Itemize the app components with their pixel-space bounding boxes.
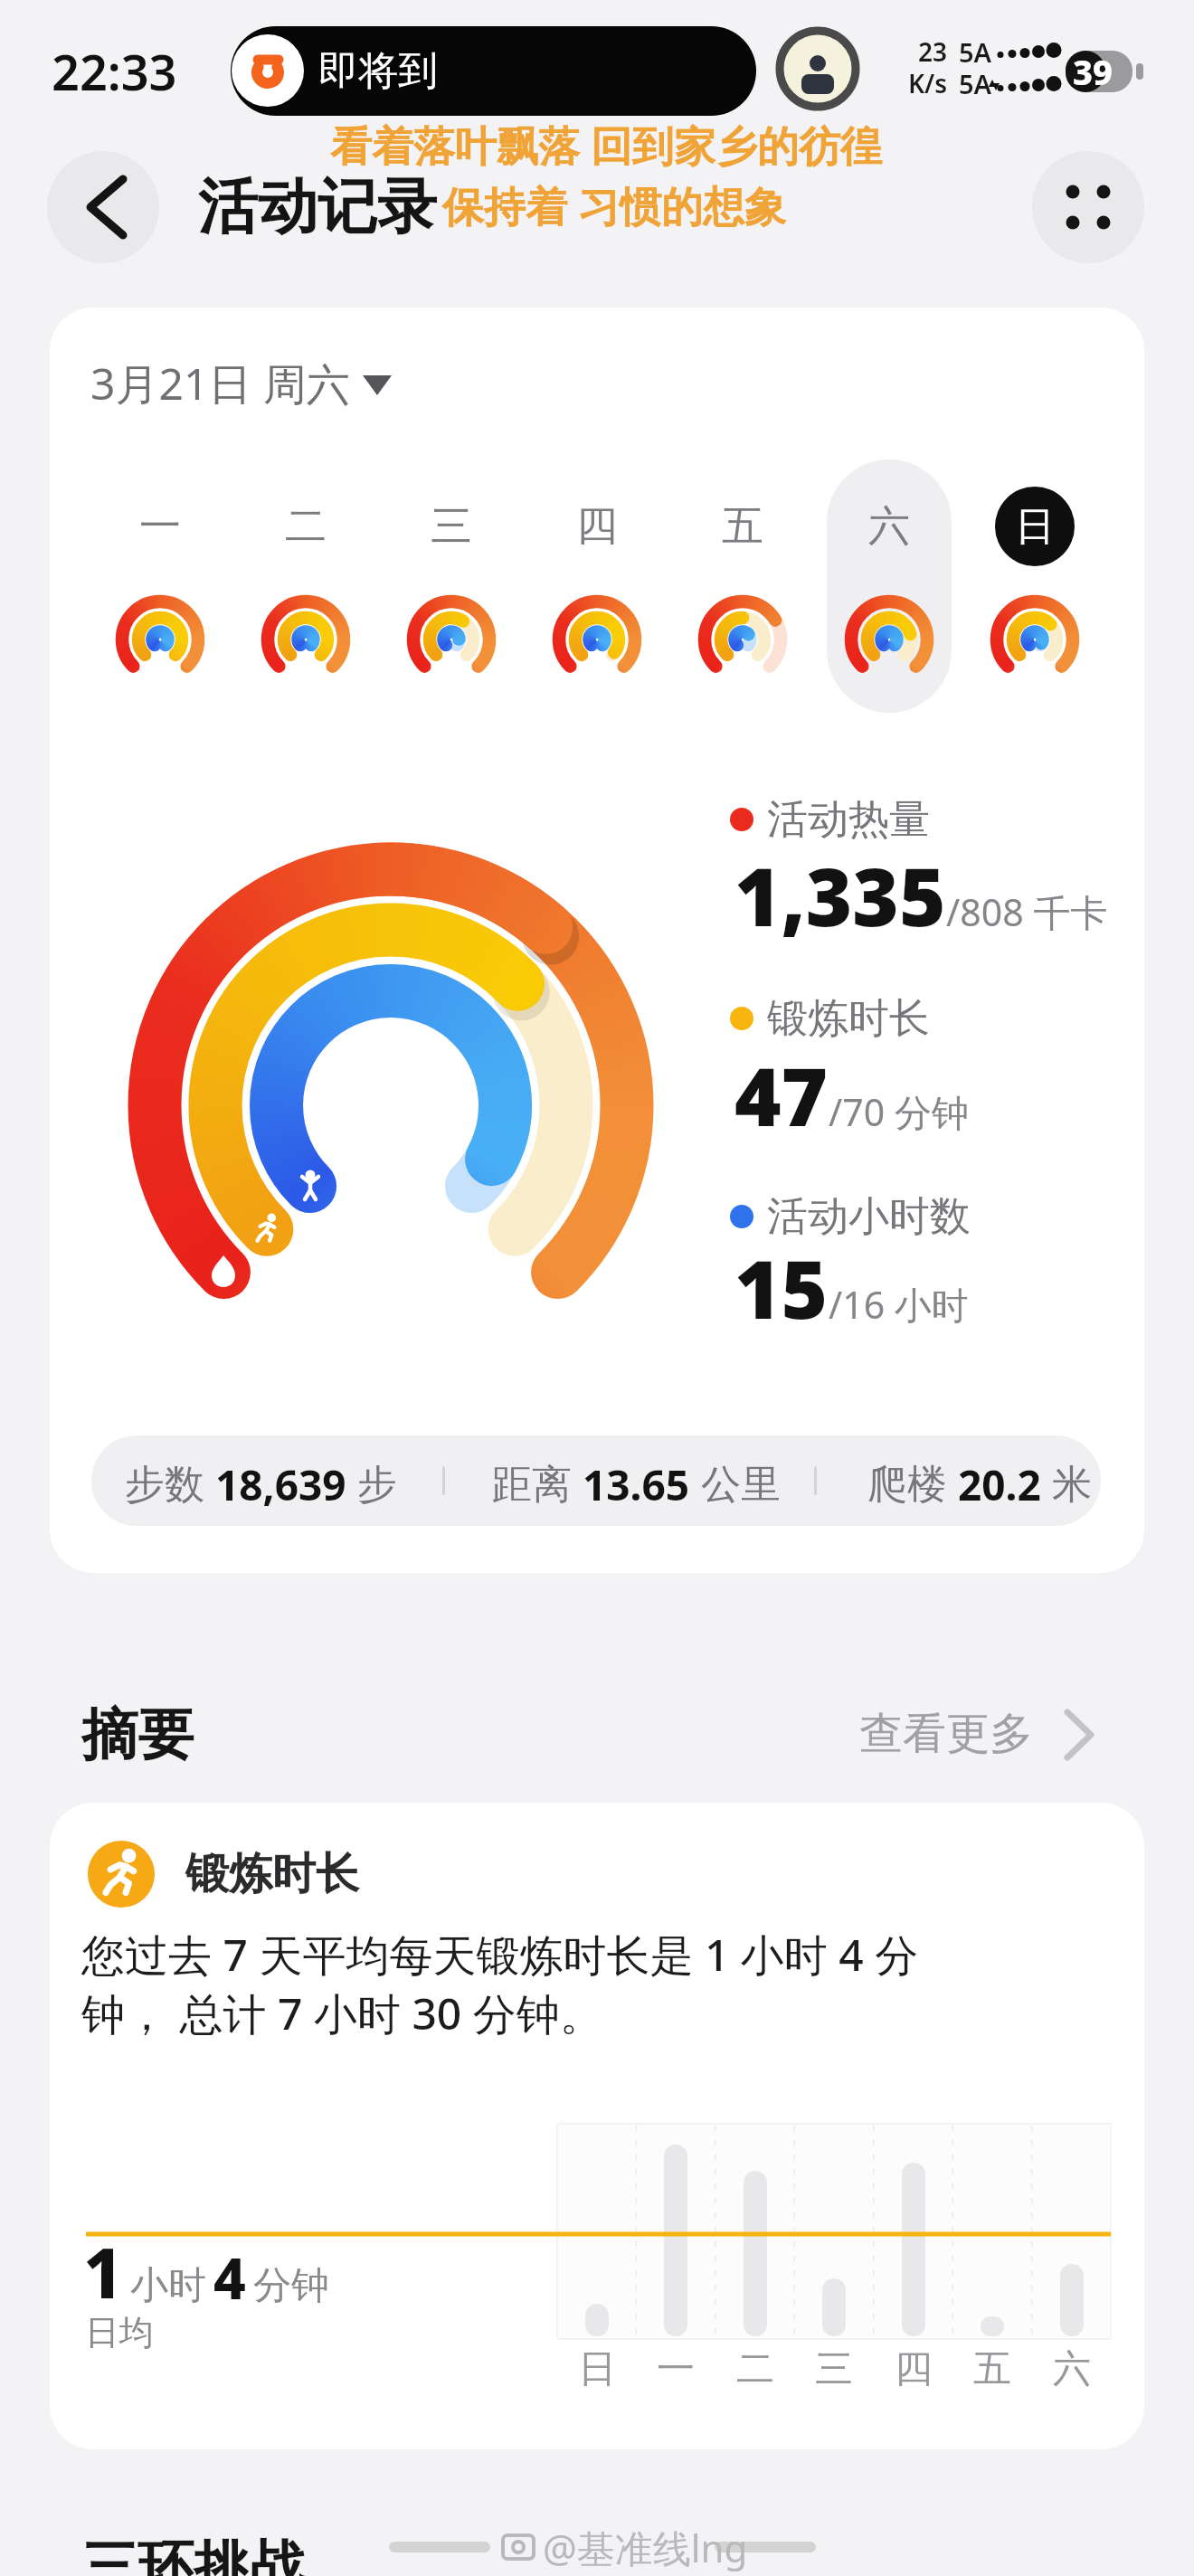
staticText: 18,639 [215,1456,346,1513]
button[interactable] [81,347,407,420]
staticText: 39 [1073,48,1113,95]
button[interactable] [776,27,859,110]
button[interactable] [678,448,808,710]
staticText: 13.65 [583,1456,690,1513]
staticText: /16 小时 [829,1279,969,1330]
staticText: 爬楼 [867,1460,947,1510]
button[interactable] [241,448,371,710]
staticText: 四 [895,2345,933,2393]
staticText: 活动热量 [767,794,930,846]
staticText: 六 [868,500,910,553]
button[interactable] [824,448,954,710]
staticText: /70 分钟 [829,1086,969,1137]
staticText: @基准线lng [543,2522,748,2573]
staticText: 日 [578,2345,616,2393]
staticText: 四 [576,500,618,553]
staticText: 23 [918,34,948,69]
staticText: 小时 [130,2262,206,2310]
staticText: 距离 [492,1460,572,1510]
button[interactable] [1032,151,1144,263]
staticText: 五 [722,500,763,553]
staticText: 五 [973,2345,1011,2393]
staticText: 5A [959,66,992,101]
staticText: 一 [139,500,181,553]
staticText: 保持着 习惯的想象 [442,177,786,234]
staticText: 15 [734,1234,829,1342]
staticText: 活动小时数 [767,1191,971,1243]
staticText: 日 [1015,502,1055,552]
staticText: 锻炼时长 [185,1847,359,1901]
button[interactable] [532,448,662,710]
button[interactable] [95,448,225,710]
staticText: 看着落叶飘落 回到家乡的彷徨 [330,117,882,174]
staticText: 1,335 [734,841,946,950]
staticText: 日均 [85,2311,154,2354]
staticText: 步 [357,1460,397,1510]
staticText: 1 [83,2225,123,2319]
staticText: 一 [657,2345,695,2393]
button[interactable] [50,1803,1144,2449]
staticText: K/s [908,66,948,100]
staticText: 分钟 [253,2262,329,2310]
button[interactable] [91,1435,1101,1526]
button[interactable] [850,1700,1113,1769]
staticText: 步数 [125,1460,204,1510]
staticText: /808 千卡 [946,886,1108,937]
staticText: 5A [959,34,992,70]
staticText: 20.2 [958,1456,1041,1513]
staticText: 3月21日 周六 [90,354,350,413]
staticText: 47 [734,1041,829,1150]
staticText: 三环挑战 [81,2532,306,2576]
button[interactable] [47,151,159,263]
button[interactable] [231,26,756,116]
staticText: 摘要 [81,1700,194,1770]
staticText: 即将到 [318,46,438,96]
staticText: 二 [736,2345,774,2393]
staticText: 22:33 [52,38,177,105]
staticText: 三 [431,500,472,553]
staticText: 公里 [701,1460,781,1510]
button[interactable] [386,448,516,710]
staticText: 锻炼时长 [767,993,930,1045]
staticText: 二 [285,500,327,553]
staticText: 六 [1053,2345,1091,2393]
button[interactable] [970,448,1100,710]
staticText: 查看更多 [859,1707,1033,1761]
staticText: 您过去 7 天平均每天锻炼时长是 1 小时 4 分 钟， 总计 7 小时 30 … [81,1925,919,2042]
staticText: 4 [213,2240,246,2316]
staticText: 米 [1052,1460,1092,1510]
staticText: 活动记录 [198,169,437,244]
staticText: 三 [815,2345,853,2393]
